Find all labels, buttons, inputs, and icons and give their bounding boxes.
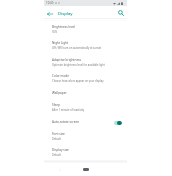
staticText: Night Light xyxy=(52,41,69,45)
staticText: 50% xyxy=(52,30,58,34)
button[interactable]: Night Light xyxy=(44,41,127,54)
button[interactable]: Sleep xyxy=(44,103,127,116)
staticText: Display xyxy=(58,11,73,17)
staticText: Default xyxy=(52,153,61,157)
staticText: Font size xyxy=(52,132,65,136)
button[interactable]: Search xyxy=(115,7,126,18)
staticText: Wallpaper xyxy=(52,91,67,95)
staticText: Sleep xyxy=(52,103,60,107)
staticText: 10:41 xyxy=(46,1,54,5)
staticText: Off / Will turn on automatically at suns… xyxy=(52,46,102,50)
button[interactable]: Adaptive brightness xyxy=(44,58,127,71)
staticText: Optimize brightness level for available … xyxy=(52,63,105,67)
staticText: Adaptive brightness xyxy=(52,58,82,62)
staticText: Display size xyxy=(52,148,69,152)
staticText: Color mode xyxy=(52,74,69,78)
staticText: Choose how colors appear on your display xyxy=(52,79,104,83)
button[interactable]: Font size xyxy=(44,132,127,145)
button[interactable]: Brightness level xyxy=(44,25,127,38)
button[interactable]: Auto-rotate screen xyxy=(44,120,127,129)
staticText: Auto-rotate screen xyxy=(52,120,80,124)
button[interactable]: Home xyxy=(83,168,89,171)
button[interactable]: Wallpaper xyxy=(44,91,127,100)
staticText: Default xyxy=(52,137,61,141)
button[interactable]: Color mode xyxy=(44,74,127,87)
button[interactable]: Back xyxy=(44,8,55,19)
button[interactable]: Display size xyxy=(44,148,127,161)
staticText: After 1 minute of inactivity xyxy=(52,108,85,112)
staticText: Brightness level xyxy=(52,25,76,29)
